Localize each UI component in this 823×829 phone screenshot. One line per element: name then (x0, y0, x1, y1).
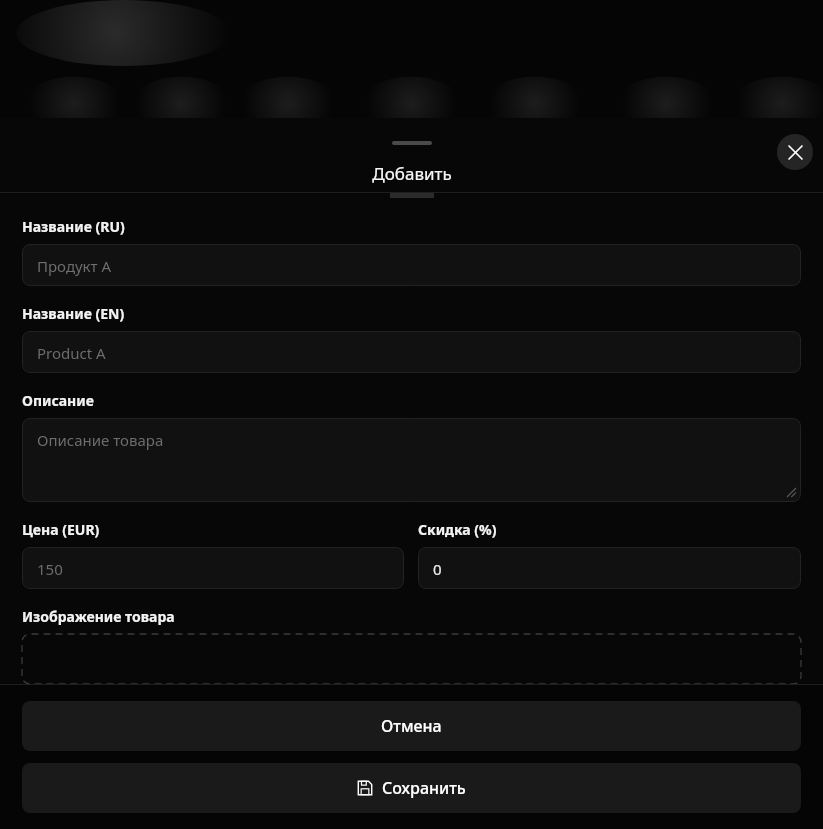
button[interactable]: Сохранить (22, 763, 801, 813)
staticText: Скидка (%) (418, 520, 497, 539)
button[interactable]: 150 (22, 547, 404, 589)
staticText: Описание товара (37, 430, 164, 450)
staticText: Изображение товара (22, 607, 175, 626)
button[interactable]: Product A (22, 331, 801, 373)
staticText: Продукт А (37, 256, 112, 276)
staticText: Отмена (381, 715, 442, 737)
staticText: 150 (37, 559, 63, 579)
button[interactable]: Описание товара (22, 418, 801, 502)
staticText: Цена (EUR) (22, 520, 100, 539)
staticText: Сохранить (382, 777, 466, 799)
button[interactable] (22, 634, 801, 684)
button[interactable]: 0 (418, 547, 801, 589)
staticText: Добавить (372, 162, 452, 185)
staticText: 0 (433, 559, 442, 579)
staticText: Название (EN) (22, 304, 125, 323)
staticText: Название (RU) (22, 217, 125, 236)
button[interactable]: Продукт А (22, 244, 801, 286)
staticText: Product A (37, 343, 106, 363)
button[interactable]: Отмена (22, 701, 801, 751)
button[interactable]: Close (777, 134, 813, 170)
staticText: Описание (22, 391, 94, 410)
